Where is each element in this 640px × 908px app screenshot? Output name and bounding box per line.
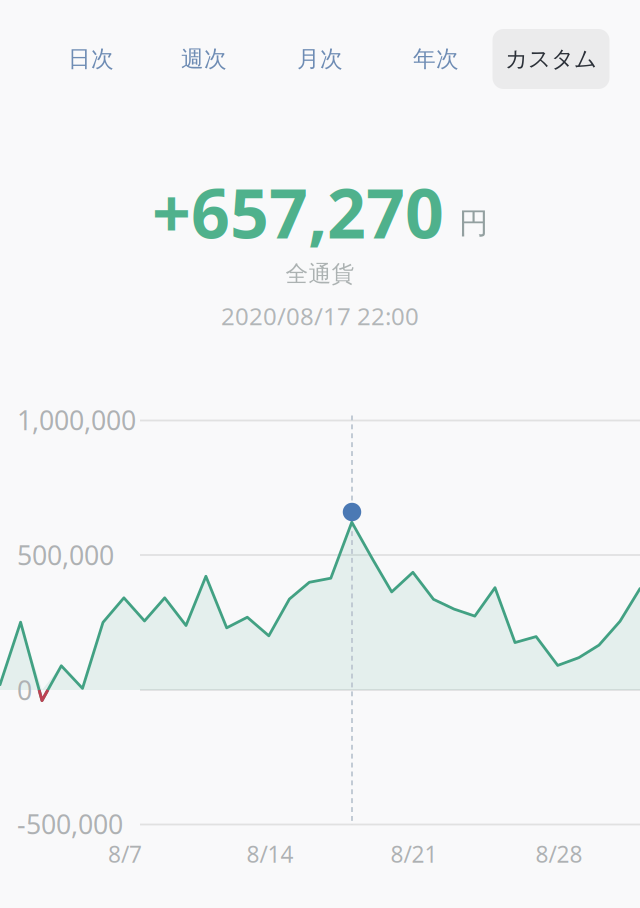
- button[interactable]: 年次: [386, 29, 486, 89]
- staticText: 年次: [413, 45, 459, 73]
- staticText: 500,000: [17, 537, 114, 573]
- staticText: カスタム: [505, 45, 597, 73]
- staticText: +657,270: [152, 167, 444, 257]
- staticText: 0: [17, 672, 32, 708]
- staticText: -500,000: [17, 806, 123, 842]
- button[interactable]: 月次: [270, 29, 370, 89]
- staticText: 週次: [181, 45, 227, 73]
- button[interactable]: カスタム: [492, 29, 609, 89]
- staticText: 円: [459, 205, 488, 241]
- staticText: 8/14: [246, 839, 293, 869]
- button[interactable]: 週次: [154, 29, 254, 89]
- staticText: 日次: [68, 45, 114, 73]
- staticText: 1,000,000: [17, 402, 136, 438]
- staticText: 2020/08/17 22:00: [221, 300, 419, 332]
- button[interactable]: 日次: [41, 29, 141, 89]
- staticText: 8/28: [535, 839, 582, 869]
- staticText: 8/7: [108, 839, 142, 869]
- staticText: 全通貨: [285, 260, 354, 288]
- staticText: 8/21: [390, 839, 437, 869]
- staticText: 月次: [297, 45, 343, 73]
